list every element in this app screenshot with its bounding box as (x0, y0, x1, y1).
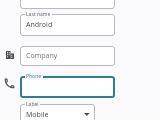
staticText: Label (26, 101, 39, 108)
button[interactable]: Mobile (20, 104, 95, 120)
button[interactable] (20, 0, 115, 9)
staticText: Phone (26, 73, 42, 80)
staticText: Mobile (26, 110, 49, 120)
button[interactable] (20, 76, 115, 98)
staticText: Company (26, 51, 58, 61)
staticText: Android (26, 20, 53, 30)
staticText: Last name (26, 11, 51, 18)
button[interactable]: Company (20, 46, 115, 66)
button[interactable]: Android (20, 14, 115, 36)
